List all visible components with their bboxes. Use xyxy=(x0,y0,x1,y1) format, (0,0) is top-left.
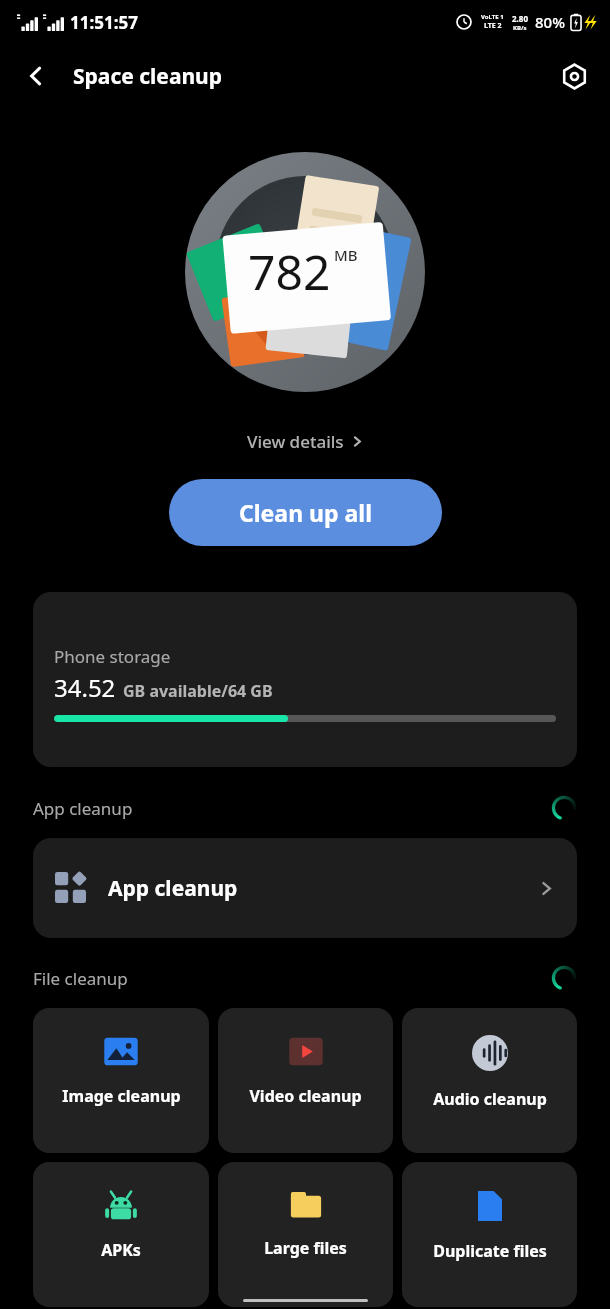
button[interactable]: Duplicate files xyxy=(402,1162,577,1307)
button[interactable]: Large files xyxy=(218,1162,393,1307)
button[interactable]: Phone storage xyxy=(33,592,577,767)
button[interactable]: Audio cleanup xyxy=(402,1008,577,1153)
staticText: KB/s xyxy=(513,24,527,32)
button[interactable]: View details xyxy=(237,426,374,457)
staticText: App cleanup xyxy=(33,797,133,820)
staticText: Audio cleanup xyxy=(433,1088,547,1110)
staticText: App cleanup xyxy=(108,874,238,903)
staticText: 80% xyxy=(535,12,565,32)
button[interactable]: App cleanup xyxy=(33,838,577,938)
staticText: VoLTE 1 xyxy=(481,13,504,21)
staticText: 2.80 xyxy=(512,13,528,24)
staticText: Image cleanup xyxy=(62,1085,181,1107)
staticText: 11:51:57 xyxy=(70,11,138,34)
staticText: Space cleanup xyxy=(73,62,223,91)
staticText: Video cleanup xyxy=(249,1085,362,1107)
button[interactable]: Settings xyxy=(552,54,596,98)
staticText: File cleanup xyxy=(33,967,128,990)
staticText: Large files xyxy=(264,1237,347,1259)
button[interactable]: APKs xyxy=(33,1162,209,1307)
staticText: Duplicate files xyxy=(433,1240,547,1262)
staticText: GB available/64 GB xyxy=(123,680,273,702)
staticText: 782 xyxy=(248,239,331,304)
button[interactable]: Image cleanup xyxy=(33,1008,209,1153)
staticText: APKs xyxy=(101,1239,141,1261)
button[interactable]: Clean up all xyxy=(169,479,442,546)
button[interactable]: Video cleanup xyxy=(218,1008,393,1153)
staticText: Phone storage xyxy=(54,645,171,668)
staticText: LTE 2 xyxy=(484,21,502,31)
staticText: Clean up all xyxy=(239,497,373,528)
button[interactable]: Back xyxy=(14,54,58,98)
staticText: View details xyxy=(247,430,344,453)
staticText: 34.52 xyxy=(54,671,116,704)
staticText: MB xyxy=(334,245,358,265)
